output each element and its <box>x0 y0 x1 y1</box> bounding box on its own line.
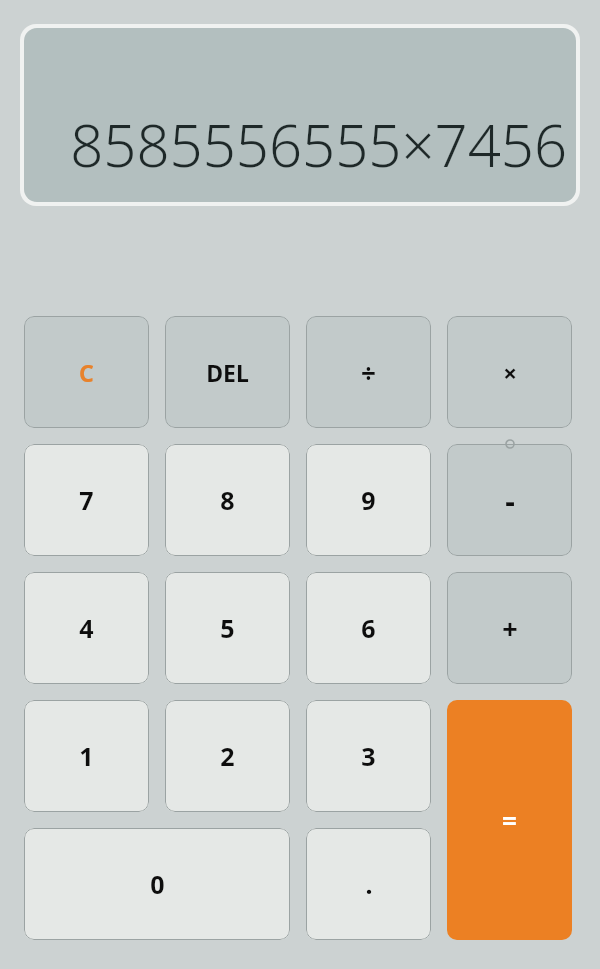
button[interactable]: DEL <box>165 316 290 428</box>
staticText: . <box>365 867 373 901</box>
staticText: 6 <box>361 611 376 645</box>
button[interactable]: Add <box>447 572 572 684</box>
button[interactable]: 8585556555×7456 <box>24 28 576 202</box>
staticText: - <box>505 480 515 521</box>
button[interactable]: 6 <box>306 572 431 684</box>
button[interactable]: 9 <box>306 444 431 556</box>
button[interactable]: Multiply <box>447 316 572 428</box>
button[interactable]: 8 <box>165 444 290 556</box>
staticText: 7 <box>79 483 94 517</box>
button[interactable]: 5 <box>165 572 290 684</box>
button[interactable]: 1 <box>24 700 149 812</box>
staticText: 3 <box>361 739 376 773</box>
button[interactable]: Decimal point <box>306 828 431 940</box>
staticText: C <box>79 357 94 388</box>
staticText: 8 <box>220 483 235 517</box>
staticText: × <box>503 356 517 389</box>
staticText: DEL <box>206 357 249 388</box>
staticText: 8585556555×7456 <box>70 105 567 184</box>
staticText: 0 <box>150 867 165 901</box>
button[interactable]: Divide <box>306 316 431 428</box>
staticText: 1 <box>79 739 94 773</box>
button[interactable]: 4 <box>24 572 149 684</box>
button[interactable]: 3 <box>306 700 431 812</box>
button[interactable]: Subtract <box>447 444 572 556</box>
staticText: ÷ <box>361 355 376 390</box>
staticText: = <box>502 803 517 838</box>
button[interactable]: 7 <box>24 444 149 556</box>
button[interactable]: C <box>24 316 149 428</box>
staticText: 4 <box>79 611 94 645</box>
staticText: 9 <box>361 483 376 517</box>
button[interactable]: Equals <box>447 700 572 940</box>
staticText: 5 <box>220 611 235 645</box>
button[interactable]: 2 <box>165 700 290 812</box>
staticText: 2 <box>220 739 235 773</box>
staticText: + <box>502 610 518 647</box>
button[interactable]: 0 <box>24 828 290 940</box>
